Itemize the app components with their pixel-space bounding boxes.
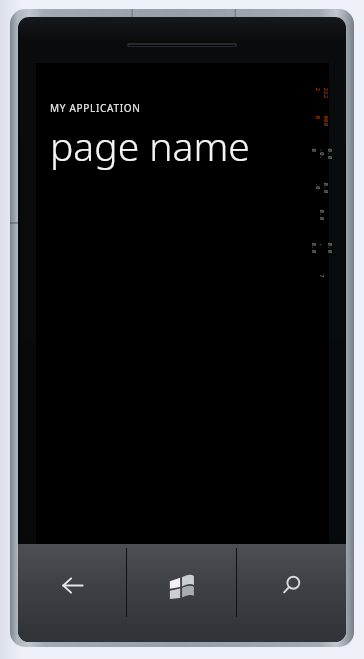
- staticText: 7: [318, 274, 326, 278]
- staticText: 0000: [313, 115, 329, 126]
- staticText: 0.0 , 0.0: [309, 242, 333, 253]
- button[interactable]: Back: [18, 544, 126, 642]
- staticText: 0.0.0: [313, 182, 329, 193]
- staticText: MY APPLICATION: [50, 101, 141, 115]
- staticText: 0.0: [317, 209, 325, 220]
- staticText: page name: [50, 119, 250, 172]
- staticText: 0.0.0.0: [309, 148, 333, 159]
- staticText: 2222: [313, 87, 329, 98]
- button[interactable]: Search: [237, 544, 346, 642]
- button[interactable]: Start: [127, 544, 236, 642]
